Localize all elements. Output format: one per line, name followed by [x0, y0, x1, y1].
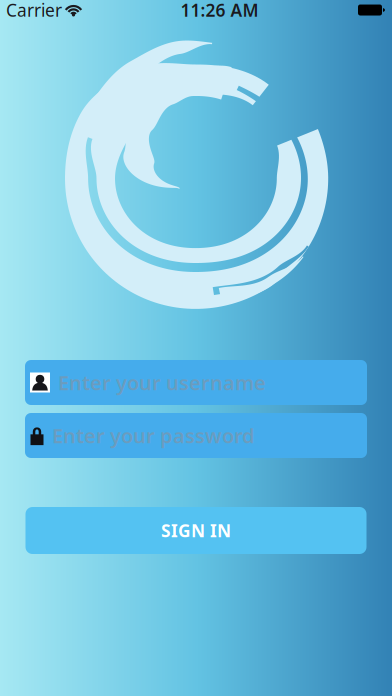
staticText: Carrier: [6, 0, 62, 21]
staticText: Enter your password: [52, 422, 255, 449]
staticText: SIGN IN: [161, 519, 231, 542]
button[interactable]: Enter your username: [25, 360, 367, 405]
button[interactable]: Enter your password: [25, 413, 367, 458]
staticText: 11:26 AM: [180, 0, 258, 21]
button[interactable]: SIGN IN: [25, 507, 366, 554]
staticText: Enter your username: [58, 369, 266, 396]
